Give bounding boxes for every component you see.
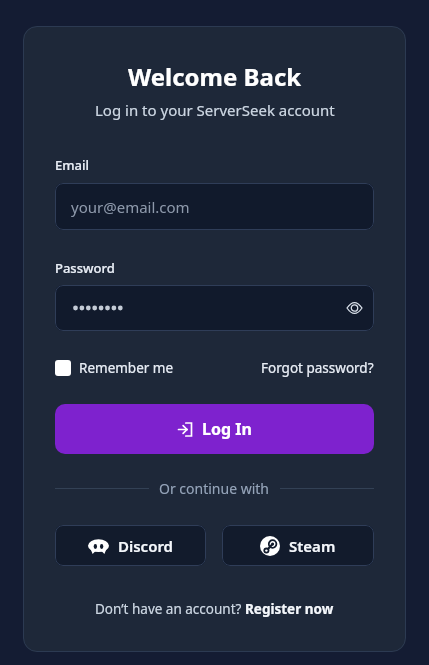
button[interactable]: Remember me <box>55 359 174 377</box>
staticText: Register now <box>245 600 334 618</box>
staticText: Welcome Back <box>128 60 302 90</box>
button[interactable]: Log In <box>55 404 374 454</box>
staticText: Log in to your ServerSeek account <box>95 100 335 120</box>
staticText: Forgot password? <box>261 359 374 377</box>
button[interactable]: Discord <box>55 525 206 566</box>
staticText: Or continue with <box>159 479 270 497</box>
staticText: Password <box>55 259 115 275</box>
staticText: Log In <box>202 418 252 440</box>
button[interactable] <box>55 285 374 331</box>
button[interactable]: Forgot password? <box>261 359 374 377</box>
staticText: Email <box>55 156 90 172</box>
button[interactable]: Don’t have an account? <box>95 600 334 618</box>
staticText: Remember me <box>79 359 174 377</box>
button[interactable]: your@email.com <box>55 183 374 230</box>
button[interactable]: Steam <box>222 525 374 566</box>
staticText: your@email.com <box>71 197 190 217</box>
staticText: Don’t have an account? <box>95 600 245 618</box>
staticText: Steam <box>289 536 336 556</box>
staticText: Discord <box>118 536 174 556</box>
